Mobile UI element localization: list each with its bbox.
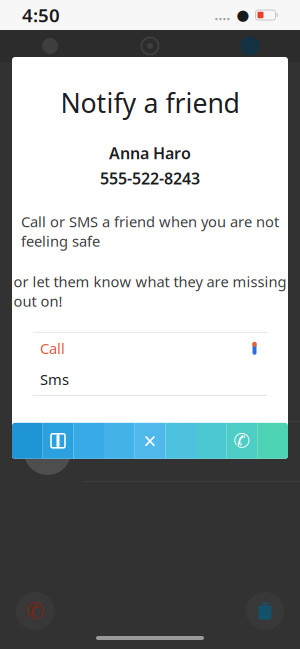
staticText: ×	[143, 426, 156, 456]
button[interactable]: Aubz	[0, 362, 300, 422]
button[interactable]: Compose message	[12, 423, 104, 459]
staticText: ....	[214, 6, 230, 24]
button[interactable]: Sms	[12, 364, 288, 395]
button[interactable]: Dismiss	[104, 423, 196, 459]
staticText: Sms	[40, 370, 69, 389]
staticText: 4:50	[22, 3, 60, 27]
staticText: Aubz	[85, 380, 125, 403]
staticText: ●	[236, 7, 249, 23]
button[interactable]: Call	[196, 423, 288, 459]
staticText: 555-522-8243	[100, 168, 200, 189]
button[interactable]: Call	[16, 592, 54, 630]
staticText: ✆	[25, 598, 44, 624]
staticText: Terence	[85, 440, 149, 463]
staticText: Notify a friend	[60, 85, 239, 120]
staticText: ✆	[233, 429, 250, 452]
staticText: Call	[40, 339, 65, 358]
staticText: Call or SMS a friend when you are not fe…	[21, 212, 279, 251]
staticText: Anna Haro	[109, 142, 191, 164]
staticText: or let them know what they are missing o…	[13, 272, 286, 311]
button[interactable]: Delete	[246, 592, 284, 630]
button[interactable]: Terence	[0, 422, 300, 482]
button[interactable]: Call	[12, 333, 288, 364]
